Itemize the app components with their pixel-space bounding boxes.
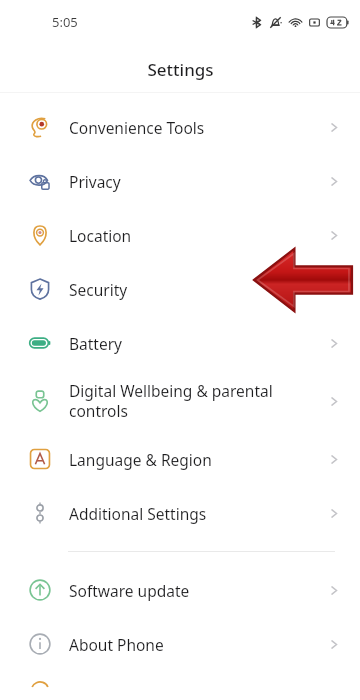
staticText: Battery: [69, 333, 322, 354]
button[interactable]: Convenience Tools: [0, 100, 360, 154]
other: Security: [29, 278, 51, 300]
staticText: Convenience Tools: [69, 117, 322, 138]
other: Additional Settings: [29, 502, 51, 524]
other: Digital Wellbeing: [29, 390, 51, 412]
staticText: Settings: [147, 58, 214, 81]
button[interactable]: Software update: [0, 563, 360, 617]
staticText: Privacy: [69, 171, 322, 192]
other: About Phone: [29, 633, 51, 655]
other: Location: [29, 224, 51, 246]
other: Privacy: [29, 170, 51, 192]
other: Language and Region: [29, 448, 51, 470]
button[interactable]: Battery: [0, 316, 360, 370]
staticText: Digital Wellbeing & parental controls: [69, 380, 322, 422]
staticText: Language & Region: [69, 449, 322, 470]
button[interactable]: Language and Region: [0, 432, 360, 486]
other: Software update: [29, 579, 51, 601]
staticText: Additional Settings: [69, 503, 322, 524]
other: Convenience Tools: [29, 116, 51, 138]
button[interactable]: Digital Wellbeing: [0, 370, 360, 432]
staticText: Location: [69, 225, 322, 246]
button[interactable]: Additional Settings: [0, 486, 360, 540]
staticText: Software update: [69, 580, 322, 601]
other: Battery: [29, 332, 51, 354]
button[interactable]: Location: [0, 208, 360, 262]
staticText: Security: [69, 279, 322, 300]
staticText: 5:05: [52, 13, 78, 31]
button[interactable]: About Phone: [0, 617, 360, 671]
button[interactable]: Privacy: [0, 154, 360, 208]
staticText: About Phone: [69, 634, 322, 655]
button[interactable]: Security: [0, 262, 360, 316]
